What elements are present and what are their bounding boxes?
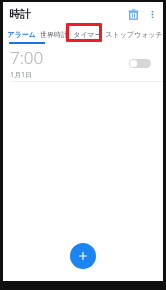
button[interactable]: 世界時計 [39,25,69,44]
button[interactable]: More options [143,5,161,23]
button[interactable]: 7:00 [3,44,163,81]
button[interactable]: タイマー [69,25,105,44]
button[interactable]: ストップウォッチ [105,25,163,44]
button[interactable]: Delete [123,4,143,24]
staticText: タイマー [73,30,102,39]
staticText: 時計 [9,7,31,21]
button[interactable]: アラーム [3,25,39,44]
staticText: アラーム [7,30,36,39]
button[interactable]: Alarm toggle [125,52,155,74]
button[interactable]: Add alarm [70,243,96,269]
staticText: 1月1日 [10,70,33,80]
staticText: 7:00 [10,46,44,69]
staticText: 世界時計 [40,30,68,39]
staticText: ストップウォッチ [105,30,163,39]
